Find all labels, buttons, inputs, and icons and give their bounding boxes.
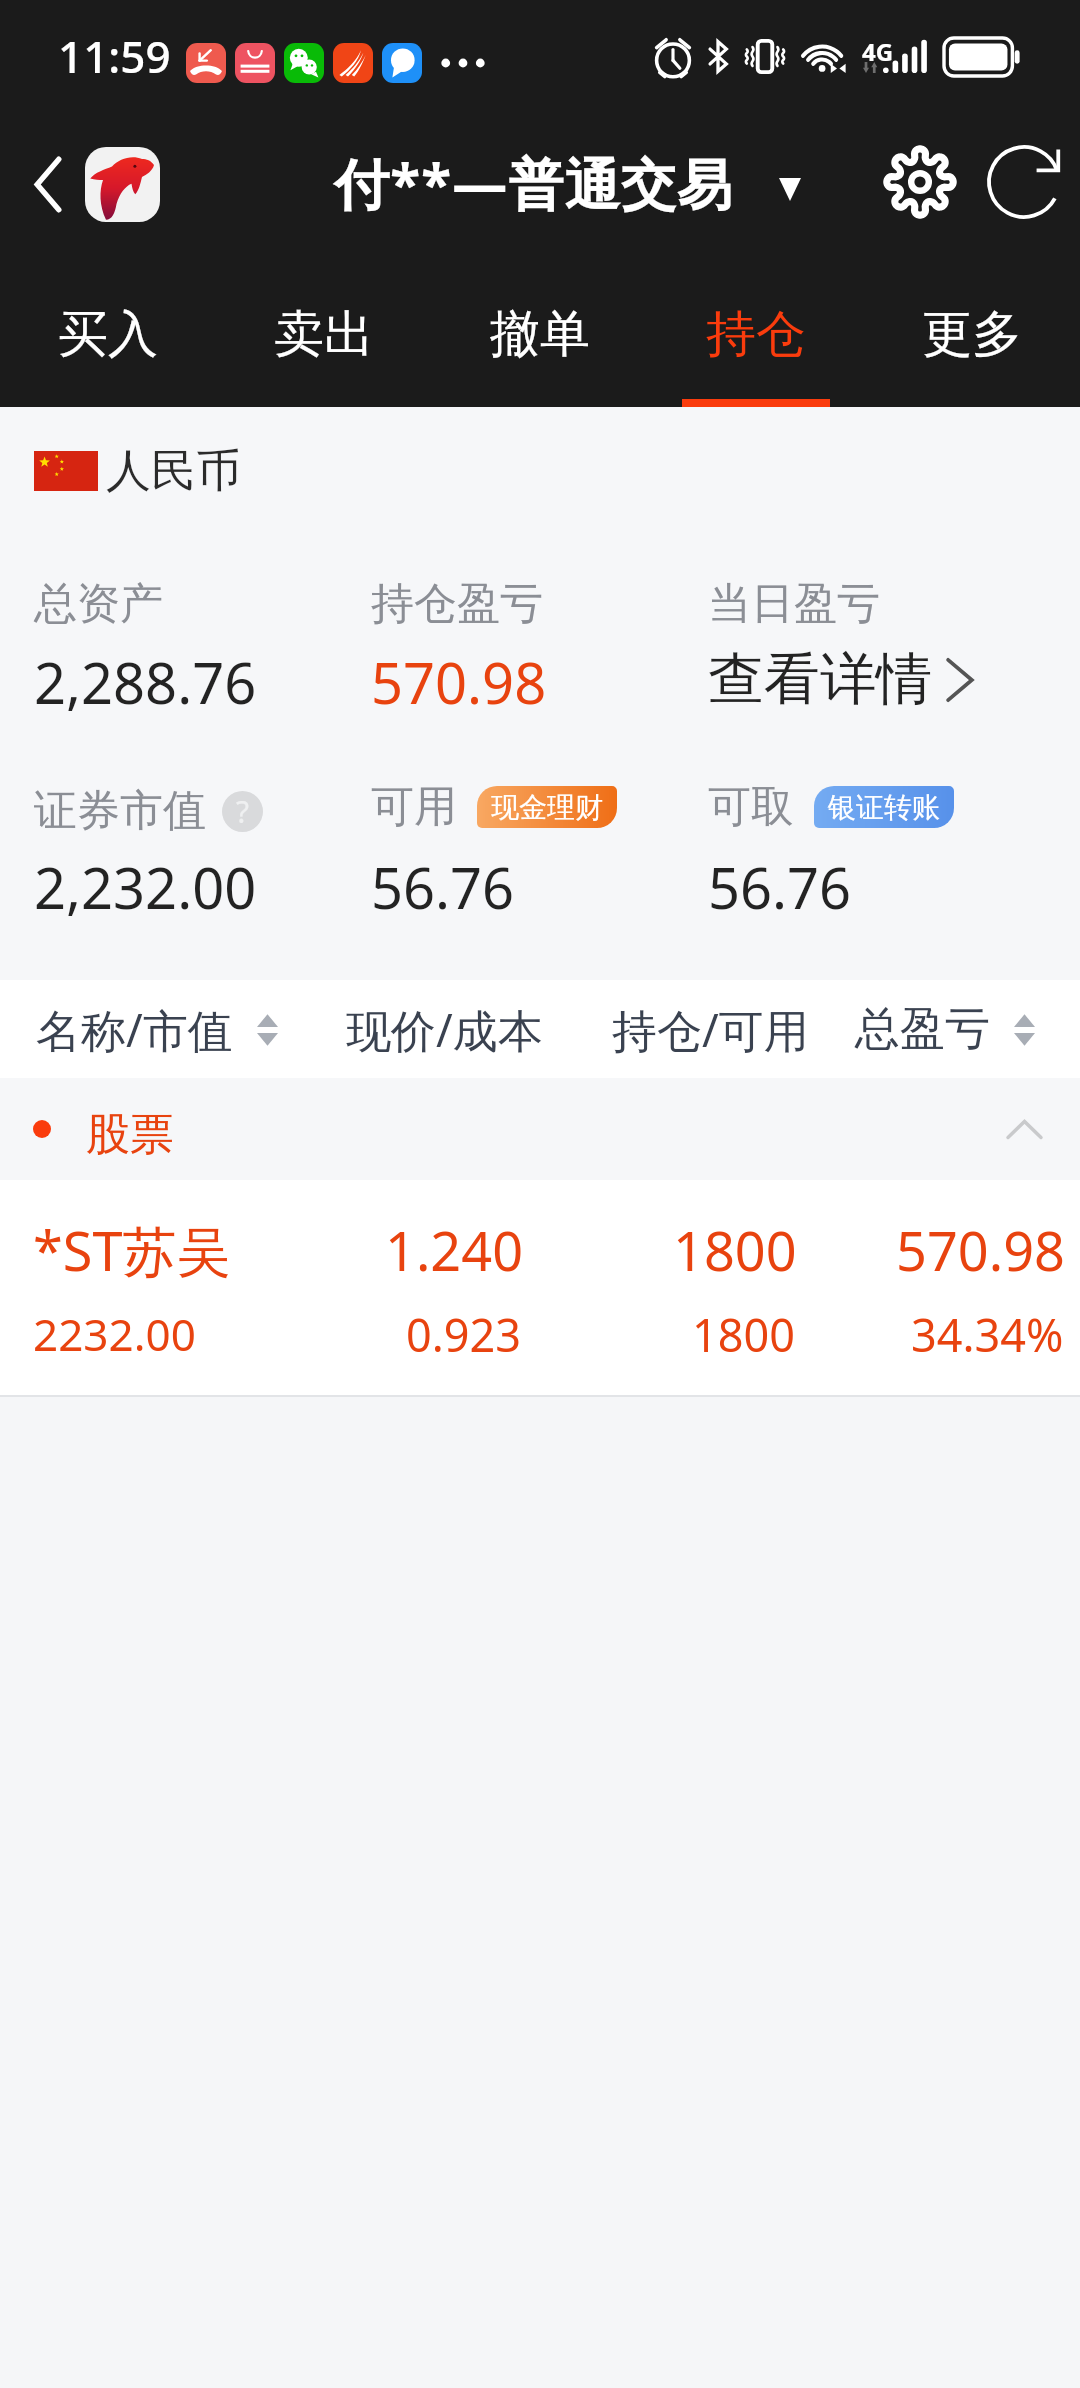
staticText: 持仓/可用	[612, 999, 809, 1060]
button[interactable]: 持仓	[648, 260, 864, 407]
staticText: 持仓盈亏	[371, 577, 543, 631]
staticText: 股票	[86, 1107, 174, 1162]
button[interactable]: 买入	[0, 260, 216, 407]
staticText: 现价/成本	[346, 999, 543, 1060]
staticText: 1800	[673, 1213, 797, 1287]
staticText: 2,288.76	[34, 644, 257, 720]
button[interactable]: 卖出	[216, 260, 432, 407]
staticText: 4G	[862, 35, 894, 68]
staticText: 查看详情	[708, 644, 932, 715]
button[interactable]: 查看详情	[708, 644, 978, 715]
staticText: 卖出	[274, 303, 374, 366]
button[interactable]: 股票	[0, 1078, 1080, 1180]
staticText: 34.34%	[911, 1304, 1064, 1365]
button[interactable]: 现价/成本	[346, 999, 543, 1060]
staticText: 人民币	[106, 443, 241, 500]
button[interactable]: 撤单	[432, 260, 648, 407]
staticText: 56.76	[371, 849, 515, 925]
staticText: 现金理财	[491, 790, 603, 825]
staticText: 总盈亏	[855, 1001, 990, 1058]
staticText: ?	[236, 791, 250, 832]
staticText: 1800	[692, 1304, 795, 1365]
staticText: 付**—普通交易	[334, 145, 734, 220]
staticText: 可用	[371, 780, 457, 834]
staticText: *ST苏吴	[33, 1213, 231, 1287]
staticText: 可取	[708, 780, 794, 834]
staticText: 1.240	[385, 1213, 524, 1287]
staticText: 11:59	[58, 26, 171, 86]
button[interactable]: 付**—普通交易	[320, 138, 820, 238]
button[interactable]: 持仓/可用	[612, 999, 809, 1060]
staticText: 买入	[58, 303, 158, 366]
button[interactable]: App logo	[85, 147, 160, 222]
staticText: 证券市值	[34, 784, 206, 838]
staticText: 56.76	[708, 849, 852, 925]
button[interactable]: Back	[10, 147, 85, 222]
button[interactable]: 现金理财	[477, 786, 617, 828]
button[interactable]: 银证转账	[814, 786, 954, 828]
staticText: 2,232.00	[34, 849, 257, 925]
staticText: 总资产	[34, 577, 163, 631]
button[interactable]: 总盈亏	[855, 1001, 1035, 1058]
staticText: 撤单	[490, 303, 590, 366]
staticText: 银证转账	[828, 790, 940, 825]
button[interactable]: Settings	[876, 138, 964, 226]
staticText: 更多	[922, 303, 1022, 366]
staticText: 当日盈亏	[708, 577, 880, 631]
staticText: 570.98	[371, 644, 547, 720]
button[interactable]: 名称/市值	[36, 999, 278, 1060]
button[interactable]: Help	[222, 791, 263, 832]
staticText: 名称/市值	[36, 999, 233, 1060]
button[interactable]: *ST苏吴	[0, 1180, 1080, 1395]
button[interactable]: Refresh	[980, 138, 1068, 226]
staticText: 2232.00	[33, 1304, 196, 1364]
staticText: 0.923	[406, 1304, 522, 1365]
staticText: 持仓	[706, 303, 806, 366]
staticText: 570.98	[896, 1213, 1065, 1287]
button[interactable]: 更多	[864, 260, 1080, 407]
